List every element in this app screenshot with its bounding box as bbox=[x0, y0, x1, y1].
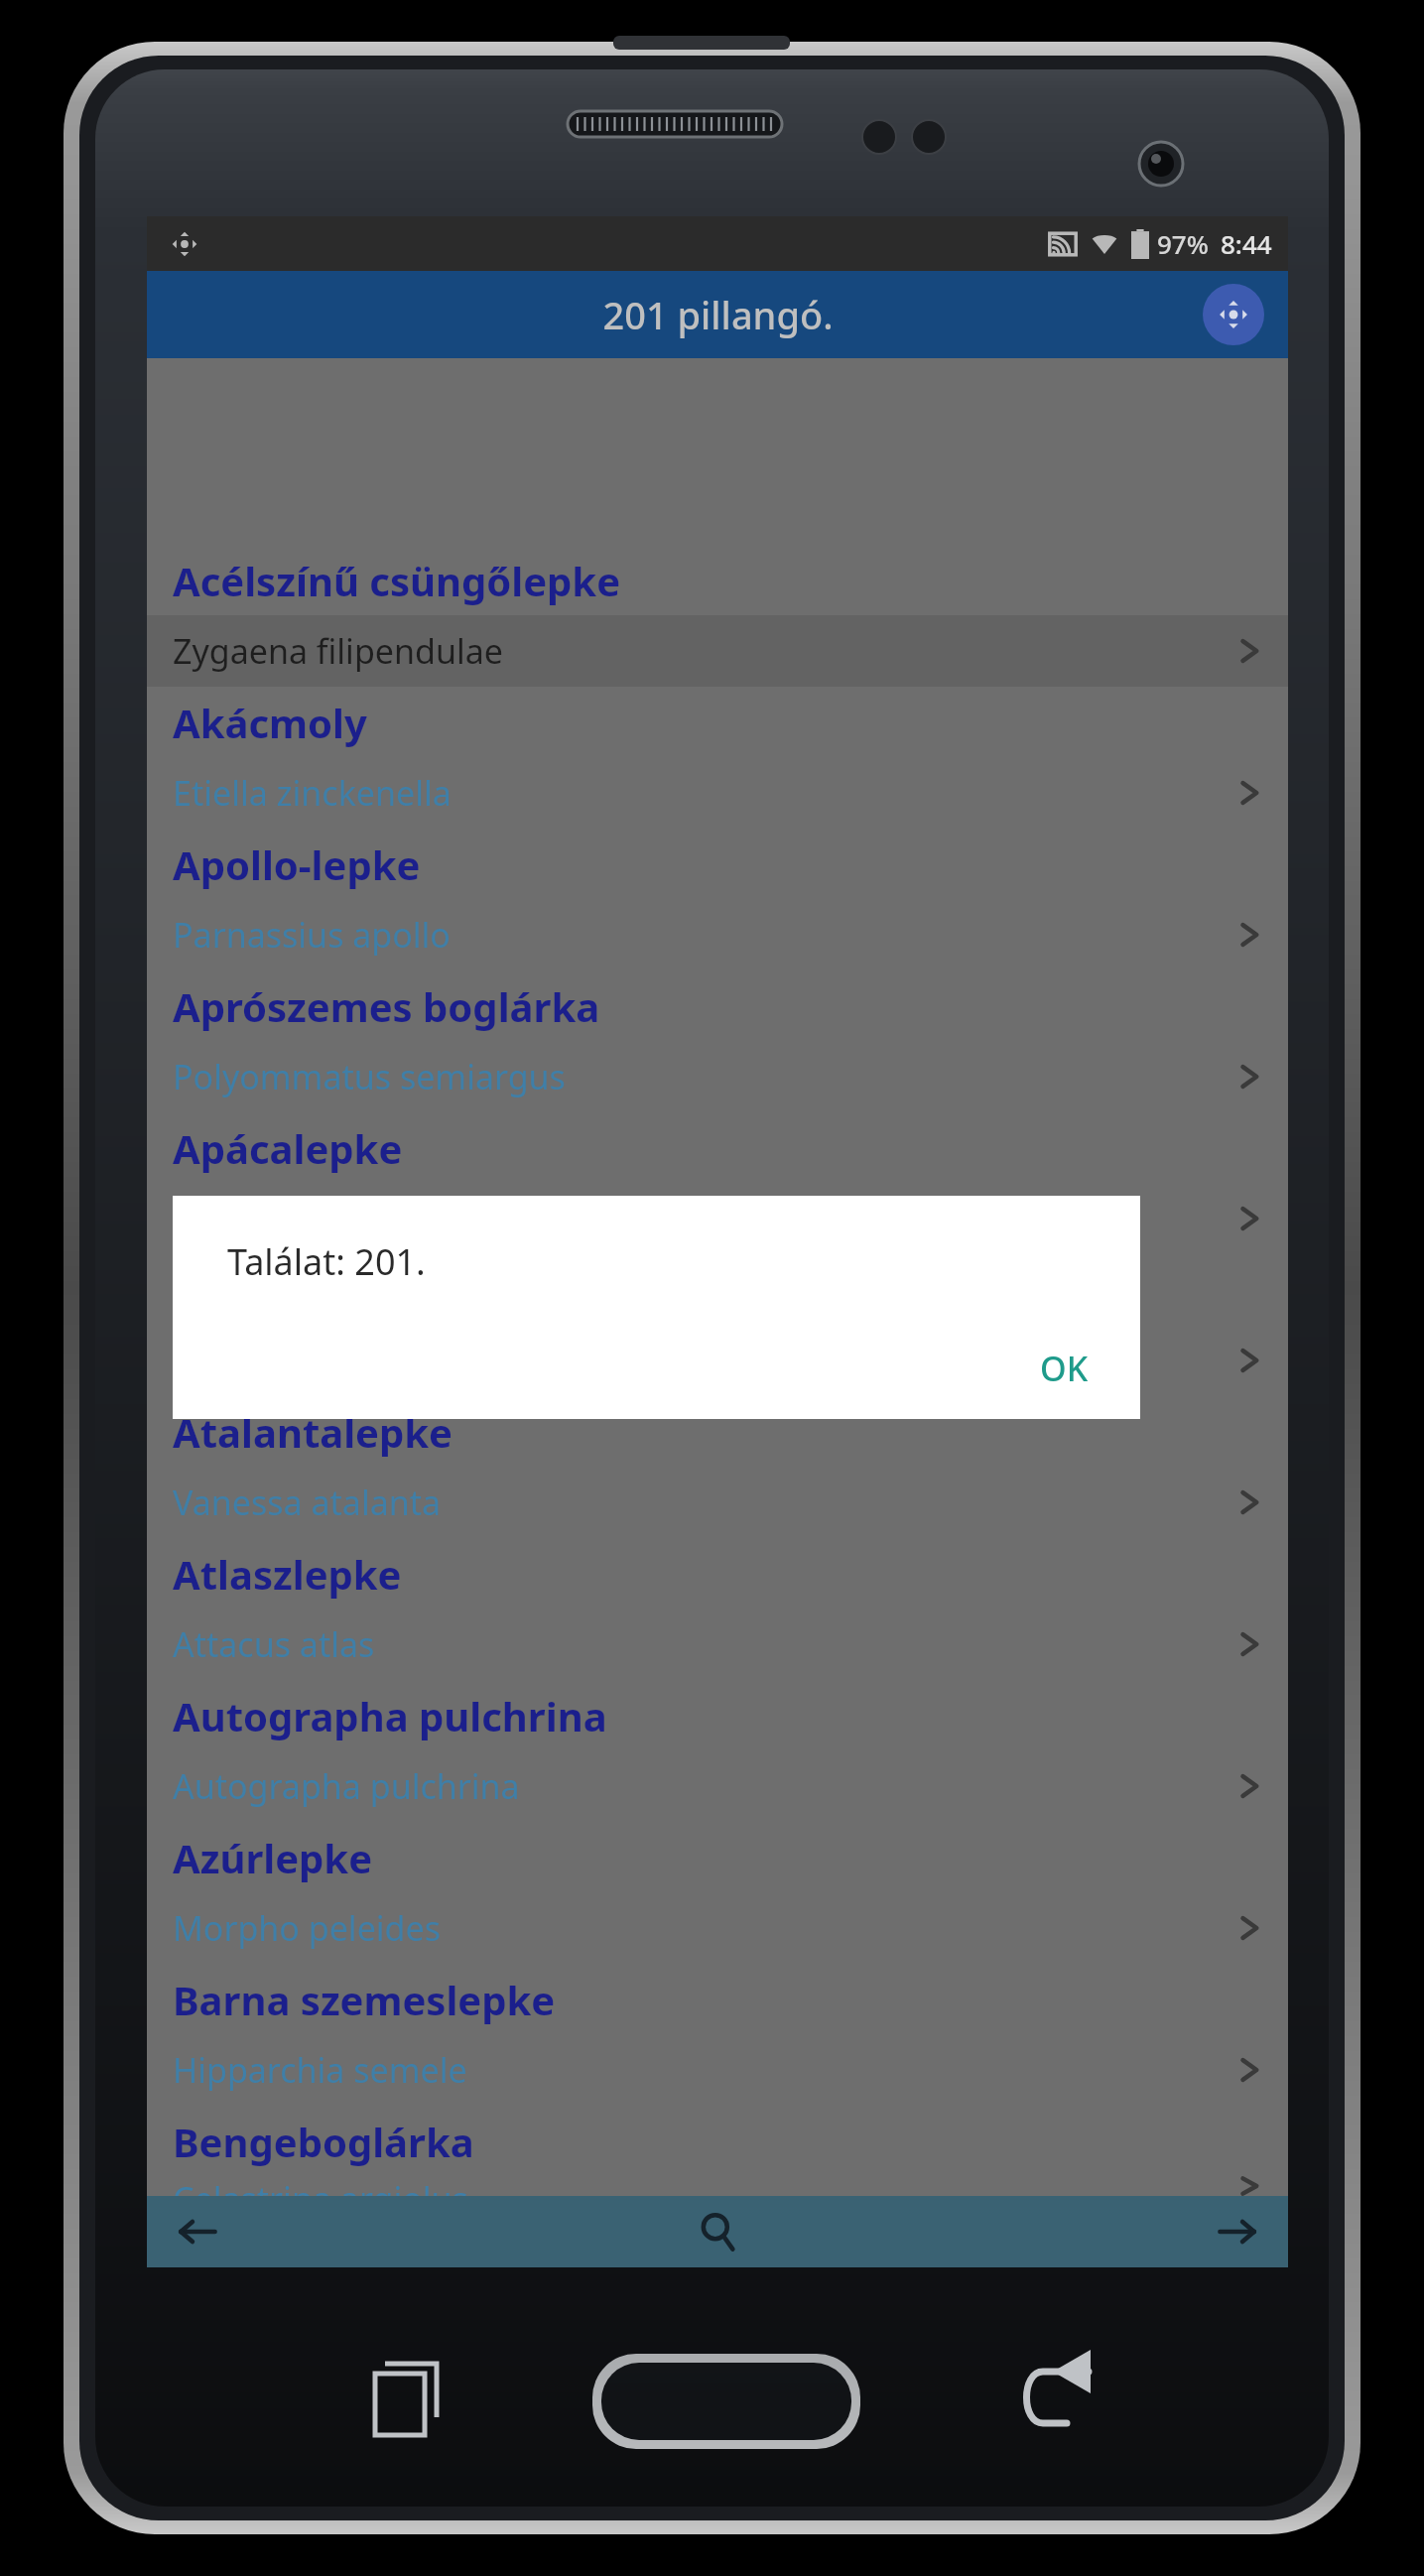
staticText: Morpho peleides bbox=[173, 1905, 441, 1951]
button[interactable]: Search bbox=[528, 2196, 908, 2267]
button[interactable]: OK bbox=[1010, 1328, 1118, 1409]
button[interactable]: Apácalepke bbox=[147, 1112, 1288, 1254]
button[interactable]: Autographa pulchrina bbox=[147, 1680, 1288, 1822]
button[interactable]: Move bbox=[1203, 284, 1264, 345]
button[interactable]: Previous bbox=[147, 2196, 528, 2267]
staticText: Hipparchia semele bbox=[173, 2047, 467, 2093]
staticText: Találat: 201. bbox=[227, 1237, 426, 1286]
staticText: Aranyos tűzlepke bbox=[173, 1263, 516, 1317]
button[interactable]: Bengeboglárka bbox=[147, 2106, 1288, 2196]
staticText: 97% bbox=[1157, 226, 1209, 261]
staticText: Azúrlepke bbox=[173, 1831, 373, 1884]
staticText: Autographa pulchrina bbox=[173, 1763, 520, 1809]
staticText: 201 pillangó. bbox=[602, 289, 834, 340]
button[interactable]: Apollo-lepke bbox=[147, 829, 1288, 970]
button[interactable]: Azúrlepke bbox=[147, 1822, 1288, 1964]
staticText: Atlaszlepke bbox=[173, 1547, 402, 1601]
staticText: Atalantalepke bbox=[173, 1405, 453, 1459]
staticText: Parnassius apollo bbox=[173, 912, 451, 958]
staticText: Vanessa atalanta bbox=[173, 1480, 442, 1525]
staticText: Apollo-lepke bbox=[173, 837, 421, 891]
button[interactable]: Acélszínű csüngőlepke bbox=[147, 545, 1288, 687]
staticText: Polyommatus semiargus bbox=[173, 1054, 566, 1099]
staticText: 8:44 bbox=[1221, 226, 1272, 261]
button[interactable]: Atlaszlepke bbox=[147, 1538, 1288, 1680]
staticText: Etiella zinckenella bbox=[173, 770, 452, 816]
button[interactable]: Aranyos tűzlepke bbox=[147, 1254, 1288, 1396]
staticText: Attacus atlas bbox=[173, 1621, 375, 1667]
staticText: OK bbox=[1040, 1346, 1089, 1391]
button[interactable]: Atalantalepke bbox=[147, 1396, 1288, 1538]
button[interactable]: Next bbox=[908, 2196, 1288, 2267]
button[interactable]: Akácmoly bbox=[147, 687, 1288, 829]
staticText: Autographa pulchrina bbox=[173, 1689, 607, 1742]
staticText: Zygaena filipendulae bbox=[173, 628, 503, 674]
staticText: Acélszínű csüngőlepke bbox=[173, 554, 621, 607]
staticText: Akácmoly bbox=[173, 696, 367, 749]
button[interactable]: Aprószemes boglárka bbox=[147, 970, 1288, 1112]
staticText: Aprószemes boglárka bbox=[173, 979, 600, 1033]
staticText: Apácalepke bbox=[173, 1121, 403, 1175]
staticText: Barna szemeslepke bbox=[173, 1973, 556, 2026]
button[interactable]: Barna szemeslepke bbox=[147, 1964, 1288, 2106]
button[interactable]: Assistive touch bbox=[165, 224, 204, 264]
staticText: Celastrina argiolus bbox=[173, 2176, 468, 2196]
staticText: Bengeboglárka bbox=[173, 2115, 474, 2168]
